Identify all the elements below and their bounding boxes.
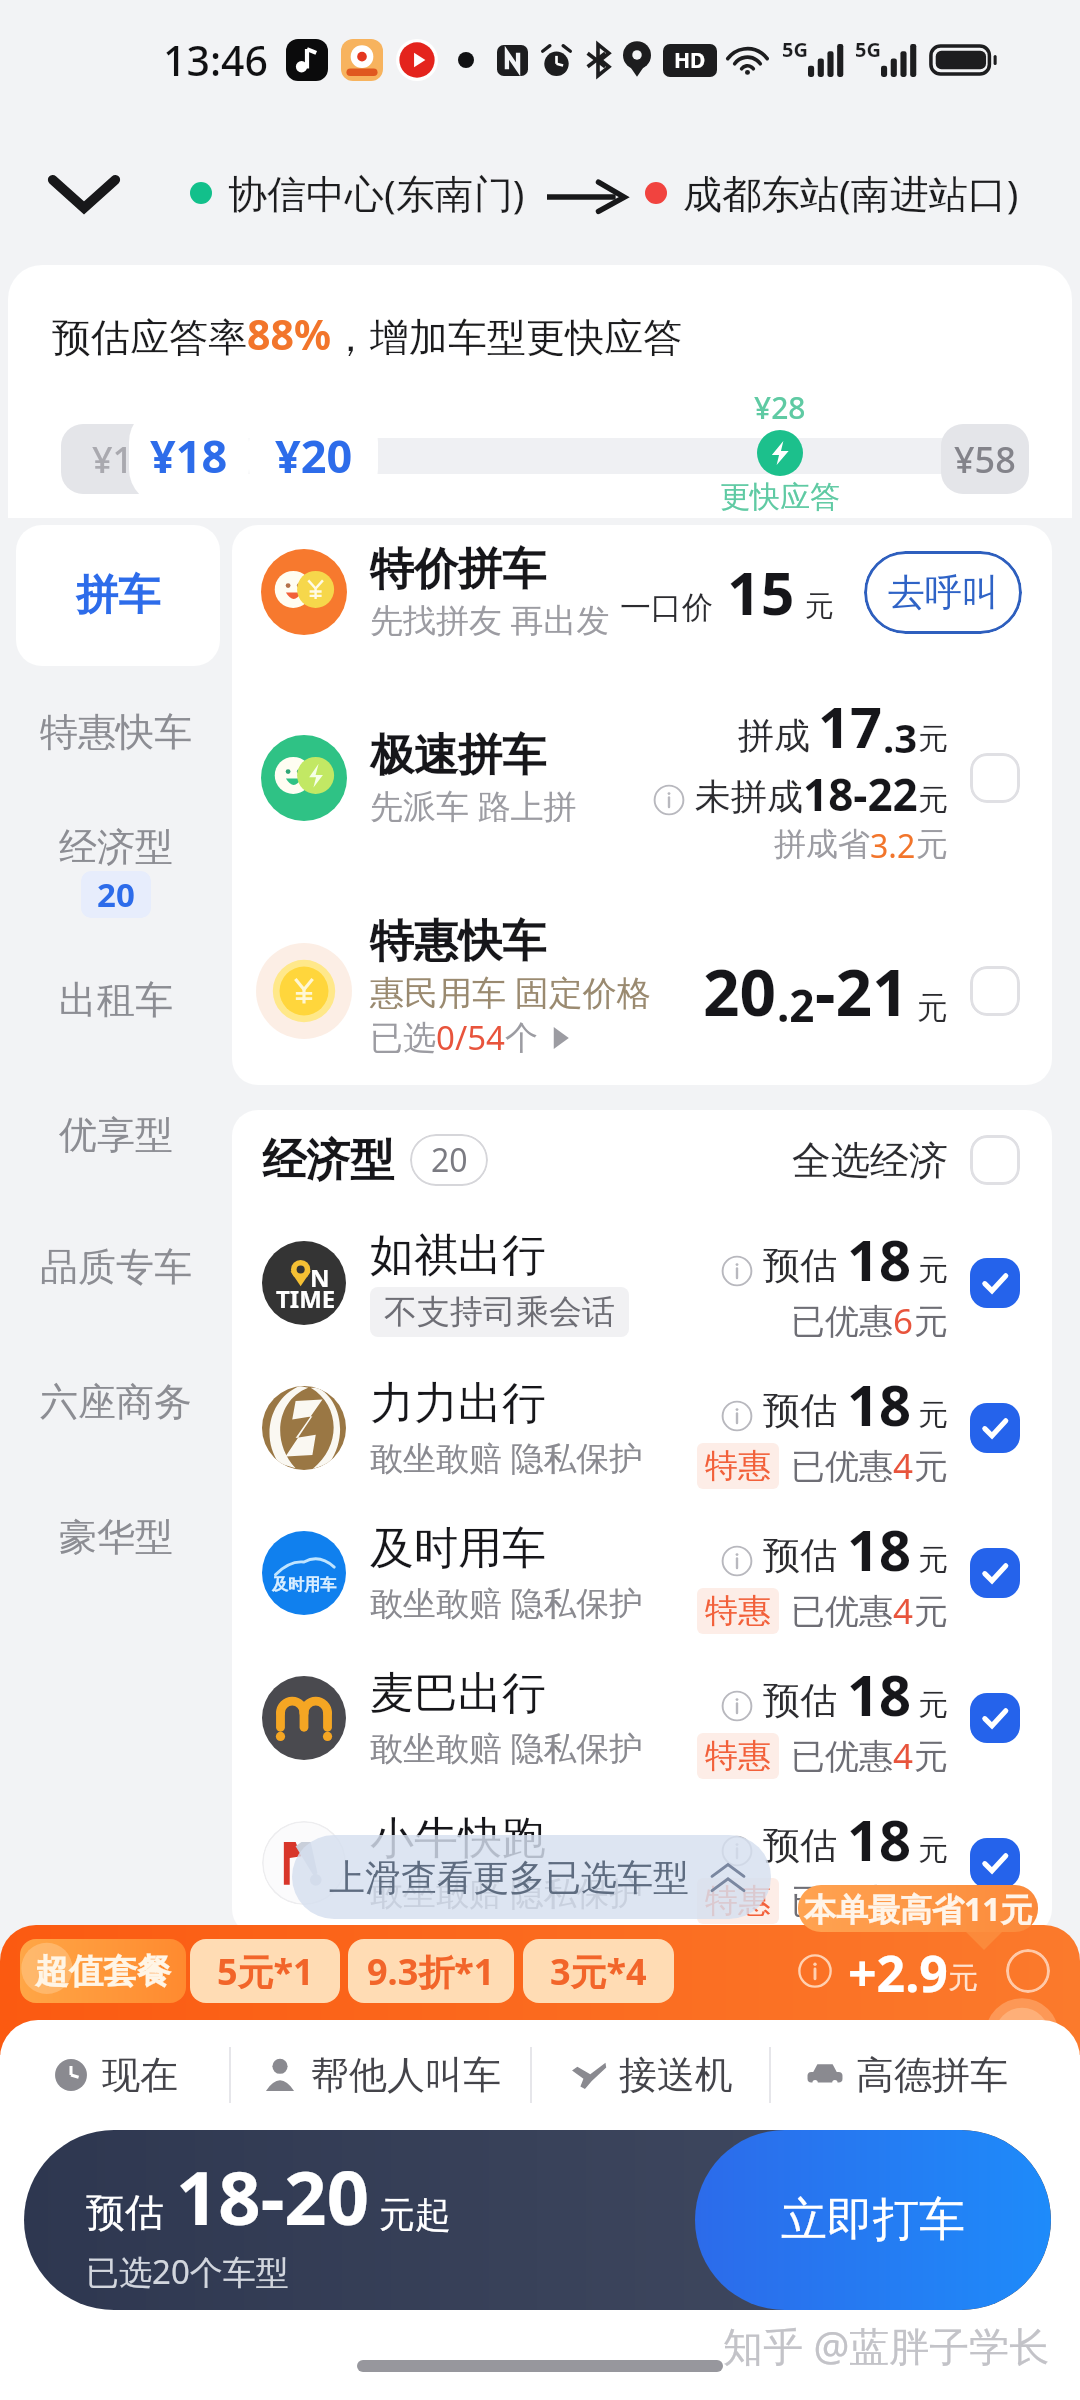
staticText: 未拼成 (695, 774, 803, 819)
button[interactable]: 优享型 (0, 1090, 232, 1180)
staticText: 特惠 (705, 1735, 771, 1777)
button[interactable]: 高德拼车 (771, 2020, 1042, 2130)
staticText: .2 (777, 975, 815, 1035)
button[interactable]: 立即打车 (695, 2130, 1051, 2310)
staticText: 预估 (763, 1822, 837, 1869)
staticText: 超值套餐 (35, 1950, 171, 1993)
button[interactable]: 去呼叫 (864, 551, 1022, 634)
staticText: 3元*4 (550, 1947, 647, 1996)
button[interactable]: ¥20 (249, 406, 378, 505)
staticText: ¥28 (754, 387, 806, 428)
staticText: 元 (918, 781, 948, 819)
button[interactable]: 接送机 (532, 2020, 769, 2130)
staticText: 拼成省 (774, 824, 870, 864)
staticText: 不支持司乘会话 (384, 1291, 615, 1333)
staticText: 上滑查看更多已选车型 (329, 1855, 689, 1900)
staticText: 13:46 (163, 32, 268, 88)
staticText: 元 (805, 588, 834, 625)
staticText: 元 (918, 1831, 948, 1869)
button[interactable]: Select (966, 749, 1024, 807)
button[interactable]: Collapse (34, 143, 134, 243)
staticText: 4 (893, 1442, 914, 1490)
staticText: 已优惠 (791, 1300, 893, 1343)
staticText: 18 (847, 1366, 912, 1442)
button[interactable]: 预估 (24, 2130, 1051, 2310)
staticText: 本单最高省11元 (804, 1887, 1033, 1931)
button[interactable]: 极速拼车 (232, 659, 1052, 897)
button[interactable]: 力力出行 (232, 1355, 1052, 1500)
button[interactable]: 拼车 (16, 525, 220, 666)
staticText: TIME (276, 1282, 336, 1315)
button[interactable]: 品质专车 (0, 1222, 232, 1312)
staticText: 经济型 (59, 823, 173, 871)
button[interactable]: Select (966, 962, 1024, 1020)
button[interactable]: 帮他人叫车 (231, 2020, 530, 2130)
staticText: ¥20 (275, 425, 353, 486)
staticText: 预估 (763, 1387, 837, 1434)
staticText: 及时用车 (272, 1575, 336, 1595)
staticText: 元 (918, 1251, 948, 1289)
button[interactable]: ¥18 (129, 406, 249, 505)
staticText: 元 (914, 1735, 948, 1778)
button[interactable]: 特价拼车 (232, 525, 1052, 659)
staticText: 个 (505, 1017, 538, 1059)
button[interactable]: 出租车 (0, 955, 232, 1045)
staticText: 经济型 (262, 1133, 394, 1188)
button[interactable]: 小牛快跑 (232, 1790, 1052, 1935)
button[interactable]: Select (966, 1689, 1024, 1747)
staticText: 5G (782, 36, 808, 63)
button[interactable]: Select (966, 1254, 1024, 1312)
staticText: 预估 (763, 1242, 837, 1289)
staticText: HD (674, 46, 706, 75)
button[interactable]: Select package (1006, 1949, 1050, 1993)
staticText: 元 (918, 1541, 948, 1579)
staticText: 4 (893, 1587, 914, 1635)
staticText: 极速拼车 (370, 728, 546, 783)
button[interactable]: N (232, 1210, 1052, 1355)
button[interactable]: 经济型 (0, 802, 232, 932)
button[interactable]: 六座商务 (0, 1357, 232, 1447)
staticText: 六座商务 (40, 1378, 192, 1426)
button[interactable]: 上滑查看更多已选车型 (292, 1835, 771, 1919)
staticText: 先找拼友 再出发 (370, 597, 610, 642)
button[interactable]: 特惠快车 (0, 687, 232, 777)
staticText: 6 (893, 1297, 914, 1345)
staticText: 特价拼车 (370, 542, 546, 597)
staticText: 预估 (763, 1677, 837, 1724)
button[interactable]: 特惠快车 (232, 897, 1052, 1085)
staticText: 成都东站(南进站口) (683, 166, 1019, 219)
staticText: 惠民用车 固定价格 (370, 969, 651, 1015)
staticText: 20 (703, 948, 777, 1035)
staticText: 全选经济 (792, 1136, 948, 1185)
staticText: 拼车 (76, 569, 160, 622)
staticText: ¥18 (150, 425, 228, 486)
staticText: 17 (818, 688, 883, 764)
staticText: 力力出行 (370, 1376, 546, 1431)
button[interactable]: Select (966, 1131, 1024, 1189)
staticText: 麦巴出行 (370, 1666, 546, 1721)
staticText: 协信中心(东南门) (228, 166, 525, 219)
button[interactable]: 5元*1 (190, 1939, 340, 2003)
button[interactable]: 9.3折*1 (348, 1939, 514, 2003)
button[interactable]: 现在 (0, 2020, 229, 2130)
staticText: 元 (918, 1396, 948, 1434)
staticText: 一口价 (620, 588, 713, 627)
staticText: 敢坐敢赔 隐私保护 (370, 1435, 643, 1480)
staticText: 已选 (370, 1017, 436, 1059)
button[interactable]: 3元*4 (523, 1939, 674, 2003)
staticText: 元 (914, 1445, 948, 1488)
button[interactable]: 及时用车 (232, 1500, 1052, 1645)
button[interactable]: Select (966, 1544, 1024, 1602)
button[interactable]: 麦巴出行 (232, 1645, 1052, 1790)
staticText: 先派车 路上拼 (370, 783, 577, 828)
staticText: 小牛快跑 (370, 1811, 546, 1866)
button[interactable]: 豪华型 (0, 1492, 232, 1582)
staticText: 18-20 (176, 2146, 369, 2247)
staticText: 接送机 (619, 2051, 733, 2099)
staticText: 高德拼车 (856, 2051, 1008, 2099)
staticText: 出租车 (59, 976, 173, 1024)
button[interactable]: Select (966, 1399, 1024, 1457)
staticText: 如祺出行 (370, 1228, 546, 1283)
button[interactable]: Select (966, 1834, 1024, 1892)
staticText: 特惠快车 (370, 914, 546, 969)
